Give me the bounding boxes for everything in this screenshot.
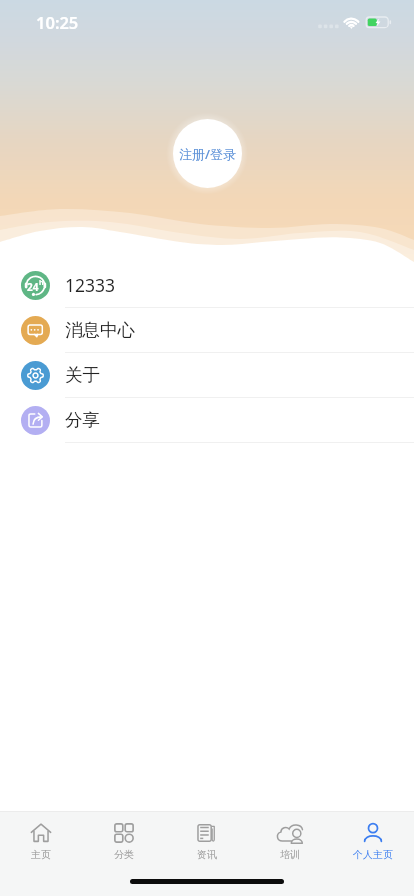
staticText: 10:25 — [36, 11, 79, 33]
staticText: 24 — [27, 280, 39, 294]
staticText: 培训 — [280, 848, 300, 861]
button[interactable]: 关于 — [0, 353, 414, 398]
staticText: h — [39, 278, 44, 288]
button[interactable]: 24 — [0, 263, 414, 308]
button[interactable]: 主页 — [0, 812, 82, 863]
button[interactable]: 资讯 — [165, 812, 248, 863]
staticText: 分享 — [65, 409, 100, 431]
staticText: 消息中心 — [65, 319, 135, 341]
button[interactable]: 分享 — [0, 398, 414, 443]
staticText: 个人主页 — [353, 848, 393, 861]
staticText: 资讯 — [197, 848, 217, 861]
staticText: 主页 — [31, 848, 51, 861]
staticText: 注册/登录 — [179, 145, 237, 163]
button[interactable]: 消息中心 — [0, 308, 414, 353]
button[interactable]: 个人主页 — [331, 812, 414, 863]
button[interactable]: 培训 — [248, 812, 331, 863]
button[interactable]: 分类 — [82, 812, 165, 863]
staticText: 分类 — [114, 848, 134, 861]
staticText: 关于 — [65, 364, 100, 386]
button[interactable]: 注册/登录 — [173, 119, 242, 188]
staticText: 12333 — [65, 273, 116, 297]
